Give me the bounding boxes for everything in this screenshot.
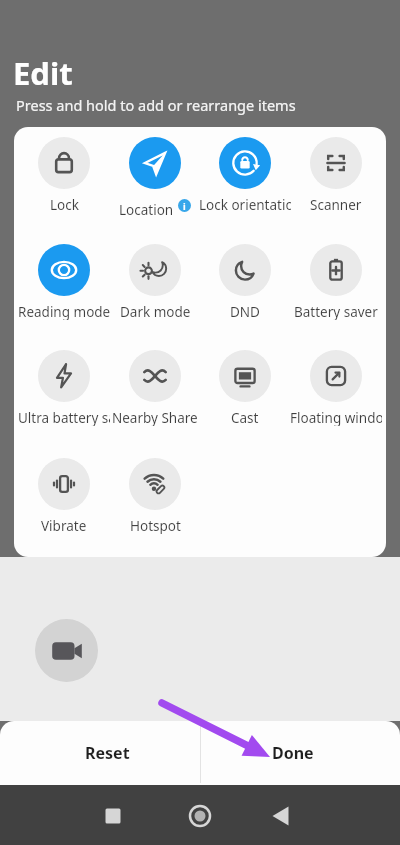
button[interactable]: Reset: [14, 721, 200, 785]
staticText: Ultra battery saver: [18, 409, 110, 426]
staticText: Location: [119, 201, 174, 218]
staticText: Floating windows: [290, 409, 382, 426]
staticText: Nearby Share: [112, 409, 198, 426]
button[interactable]: [310, 137, 362, 189]
staticText: Dark mode: [120, 303, 191, 320]
button[interactable]: [266, 801, 296, 831]
button[interactable]: [38, 137, 90, 189]
button[interactable]: [38, 458, 90, 510]
staticText: DND: [230, 303, 260, 320]
staticText: Reset: [85, 742, 130, 764]
button[interactable]: [219, 137, 271, 189]
button[interactable]: [38, 350, 90, 402]
staticText: Lock: [50, 196, 79, 213]
staticText: Edit: [13, 52, 73, 94]
button[interactable]: [129, 244, 181, 296]
button[interactable]: [129, 137, 181, 189]
staticText: Lock orientation: [199, 196, 291, 213]
staticText: Press and hold to add or rearrange items: [16, 95, 296, 115]
staticText: Hotspot: [130, 517, 181, 534]
button[interactable]: [98, 801, 128, 831]
staticText: Cast: [231, 409, 259, 426]
button[interactable]: Done: [200, 721, 386, 785]
button[interactable]: [310, 244, 362, 296]
button[interactable]: [129, 458, 181, 510]
button[interactable]: [35, 619, 98, 682]
staticText: Done: [272, 742, 314, 764]
button[interactable]: [38, 244, 90, 296]
button[interactable]: [185, 801, 215, 831]
staticText: Battery saver: [294, 303, 378, 320]
button[interactable]: [219, 244, 271, 296]
button[interactable]: [219, 350, 271, 402]
button[interactable]: [129, 350, 181, 402]
staticText: Scanner: [310, 196, 362, 213]
staticText: Vibrate: [41, 517, 87, 534]
staticText: i: [183, 200, 186, 212]
staticText: Reading mode: [18, 303, 110, 320]
button[interactable]: [310, 350, 362, 402]
